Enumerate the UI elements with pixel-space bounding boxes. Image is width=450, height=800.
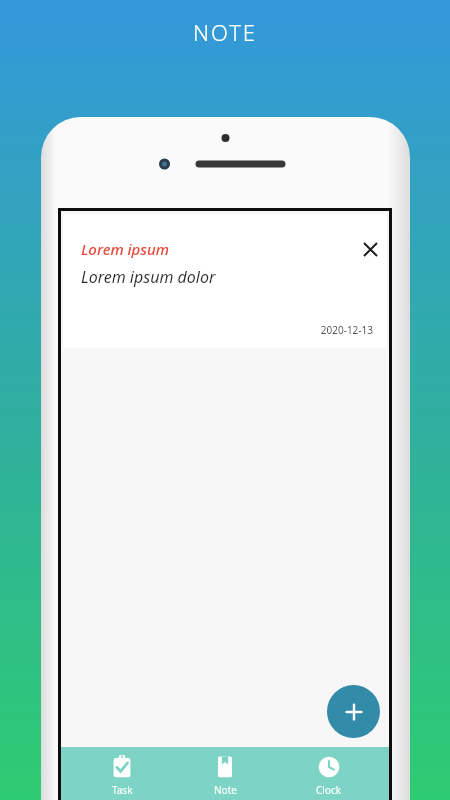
button[interactable]: Task xyxy=(79,747,165,800)
staticText: Clock xyxy=(316,783,342,797)
staticText: Lorem ipsum xyxy=(81,239,170,259)
staticText: Task xyxy=(112,783,133,797)
button[interactable]: Add note xyxy=(327,685,380,738)
staticText: Lorem ipsum dolor xyxy=(81,266,216,288)
staticText: NOTE xyxy=(0,17,450,47)
button[interactable]: Clock xyxy=(286,747,372,800)
staticText: 2020-12-13 xyxy=(81,323,373,337)
button[interactable]: Close note xyxy=(356,235,384,263)
staticText: Note xyxy=(214,783,237,797)
button[interactable]: Note xyxy=(182,747,268,800)
button[interactable]: Lorem ipsum xyxy=(63,214,387,348)
